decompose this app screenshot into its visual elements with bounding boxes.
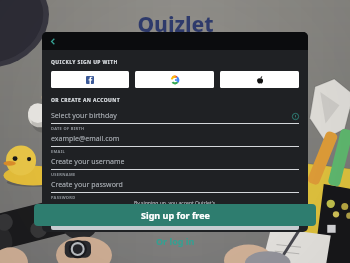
staticText: PASSWORD [51,195,76,200]
staticText: Quizlet [137,10,214,39]
button[interactable]: Back [46,34,60,48]
button[interactable]: Sign up for free [34,204,316,226]
staticText: example@email.com [51,134,299,144]
button[interactable]: example@email.com [51,131,299,154]
staticText: QUICKLY SIGN UP WITH [51,59,118,66]
button[interactable]: Select your birthday [51,108,299,131]
button[interactable]: Sign up with Facebook [51,71,129,88]
button[interactable]: Sign up with Apple [220,71,299,88]
staticText: Create your password [51,180,299,190]
button[interactable]: Create your password [51,177,299,200]
staticText: OR CREATE AN ACCOUNT [51,97,121,104]
staticText: USERNAME [51,172,76,177]
staticText: DATE OF BIRTH [51,126,85,131]
staticText: Sign up for free [141,209,210,221]
staticText: Select your birthday [51,111,292,121]
button[interactable]: Or log in [148,233,203,249]
staticText: Or log in [156,235,195,247]
button[interactable]: Sign up [51,211,299,230]
staticText: EMAIL [51,149,66,154]
other: Why we need your birthday [292,113,299,120]
button[interactable]: Create your username [51,154,299,177]
staticText: Sign up [162,216,188,226]
staticText: Create your username [51,157,299,167]
button[interactable]: Sign up with Google [135,71,214,88]
staticText: By signing up, you accept Quizlet's [134,200,216,207]
